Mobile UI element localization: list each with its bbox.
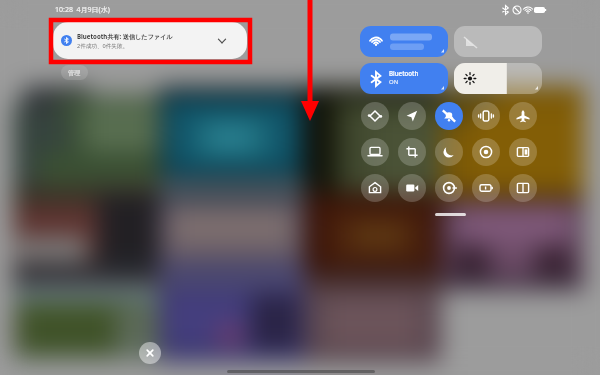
button[interactable]: Eye comfort <box>435 174 463 202</box>
button[interactable]: Screenshot <box>398 138 426 166</box>
button[interactable]: Wi-Fi <box>360 26 448 57</box>
button[interactable]: Bluetooth <box>360 63 448 94</box>
staticText: Bluetooth共有: 送信したファイル <box>77 32 173 40</box>
button[interactable]: Brightness <box>454 63 542 94</box>
button[interactable]: Auto rotate <box>361 102 389 130</box>
staticText: 10:28 4月9日(水) <box>55 5 110 15</box>
button[interactable]: 管理 <box>61 65 88 80</box>
button[interactable]: Video <box>398 174 426 202</box>
button[interactable]: Split screen <box>509 138 537 166</box>
button[interactable]: Location <box>398 102 426 130</box>
button[interactable]: Battery saver <box>472 174 500 202</box>
button[interactable]: Night mode <box>435 138 463 166</box>
button[interactable]: Cast screen <box>361 138 389 166</box>
button[interactable]: Close <box>139 342 161 364</box>
staticText: ON <box>389 78 399 86</box>
button[interactable]: Do not disturb <box>435 102 463 130</box>
staticText: 2件成功、0件失敗。 <box>77 42 129 50</box>
staticText: Bluetooth <box>389 69 419 77</box>
button[interactable]: Cast <box>454 26 542 57</box>
button[interactable]: Airplane mode <box>509 102 537 130</box>
button[interactable]: Bluetooth共有: 送信したファイル <box>53 22 247 59</box>
staticText: 管理 <box>68 69 81 77</box>
button[interactable]: Home camera <box>361 174 389 202</box>
button[interactable]: Expand <box>215 34 229 48</box>
button[interactable]: Reading mode <box>509 174 537 202</box>
button[interactable]: Vibrate <box>472 102 500 130</box>
button[interactable]: Screen record <box>472 138 500 166</box>
